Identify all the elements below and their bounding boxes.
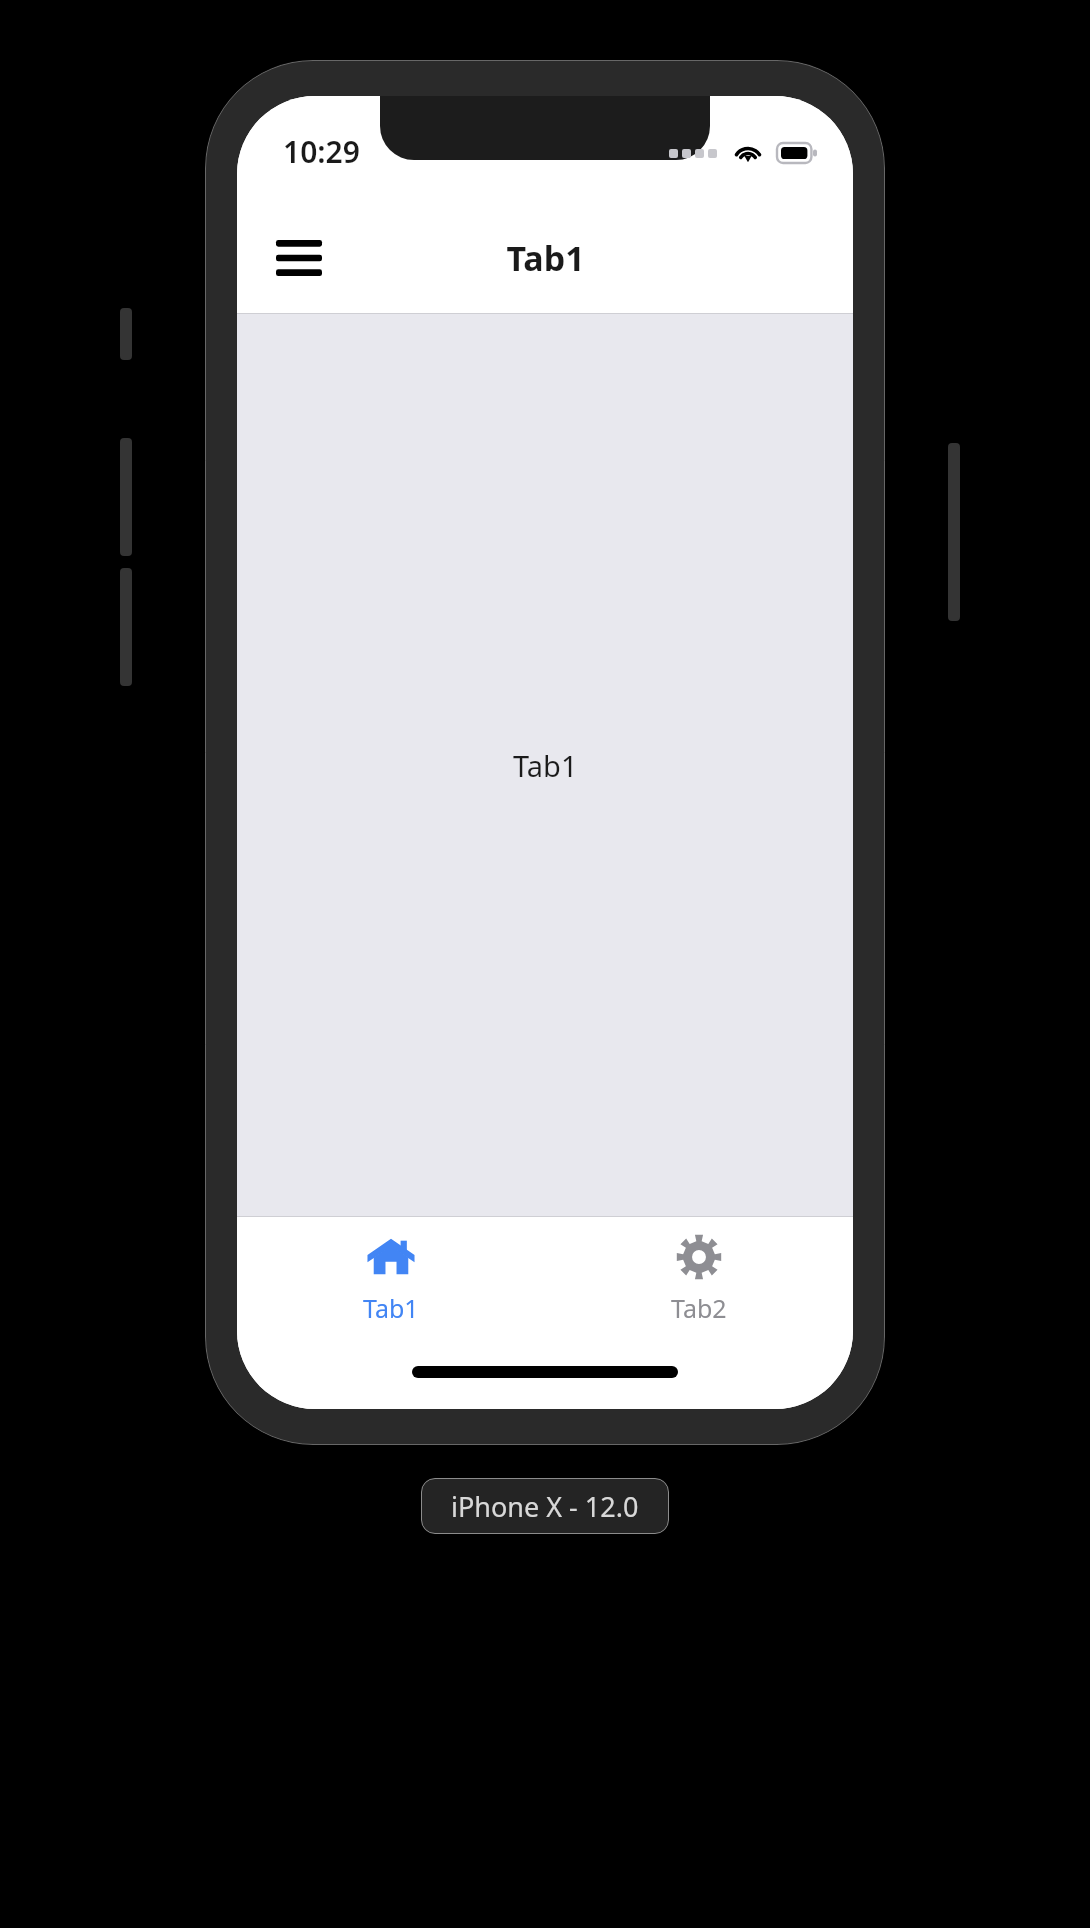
button[interactable]: Open navigation menu — [261, 220, 337, 296]
staticText: Tab1 — [363, 1291, 419, 1325]
staticText: Tab2 — [671, 1291, 727, 1325]
button[interactable]: iPhone X - 12.0 — [421, 1478, 669, 1534]
staticText: Tab1 — [513, 746, 578, 785]
staticText: 10:29 — [283, 131, 360, 172]
button[interactable]: Tab1 — [237, 1217, 545, 1347]
button[interactable]: Tab2 — [545, 1217, 853, 1347]
staticText: Tab1 — [506, 235, 585, 281]
staticText: iPhone X - 12.0 — [451, 1488, 639, 1525]
